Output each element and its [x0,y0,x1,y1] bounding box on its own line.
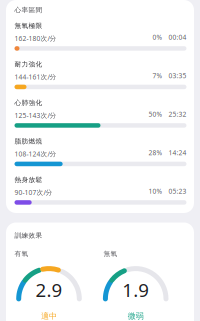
staticText: 25:32 [168,110,186,119]
staticText: 微弱 [128,311,144,321]
staticText: 14:24 [168,148,186,157]
staticText: 10% [148,187,162,196]
staticText: 無氧 [104,250,118,258]
staticText: 無氧極限 [14,22,42,30]
staticText: 05:23 [168,187,186,196]
staticText: 162-180次/分 [14,34,56,43]
staticText: 有氧 [14,250,28,258]
staticText: 熱身放鬆 [14,176,42,184]
staticText: 50% [148,110,162,119]
staticText: 耐力強化 [14,60,42,68]
staticText: 90-107次/分 [14,188,52,197]
staticText: 1.9 [122,277,149,302]
staticText: 心肺強化 [14,99,42,107]
staticText: 2.9 [35,277,62,302]
staticText: 144-161次/分 [14,72,56,81]
staticText: 03:35 [168,71,186,80]
staticText: 108-124次/分 [14,149,56,158]
staticText: 7% [152,71,162,80]
staticText: 心率區間 [14,6,42,14]
staticText: 125-143次/分 [14,111,56,120]
staticText: 00:04 [168,33,186,42]
staticText: 訓練效果 [14,231,42,240]
staticText: 脂肪燃燒 [14,137,42,145]
staticText: 適中 [41,311,57,321]
staticText: 28% [148,148,162,157]
staticText: 0% [152,33,162,42]
